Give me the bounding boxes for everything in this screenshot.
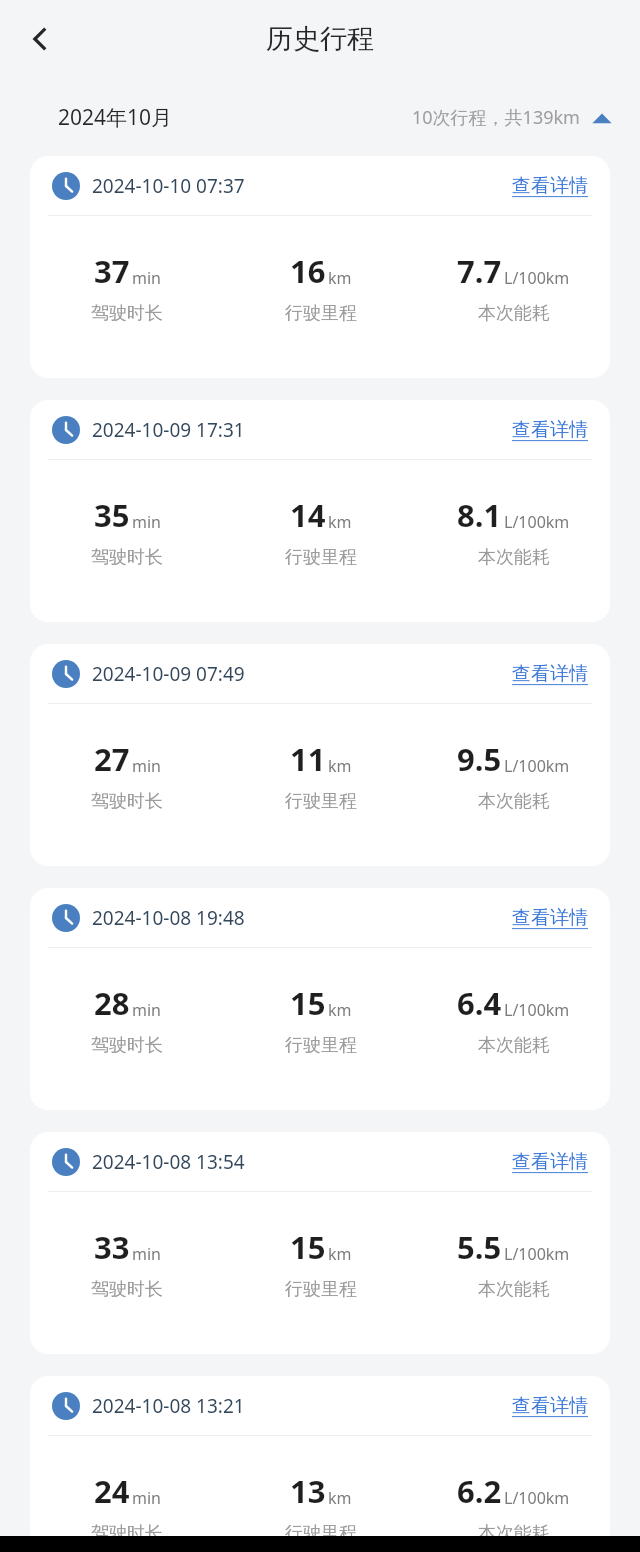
staticText: 查看详情 [512, 1394, 588, 1418]
button[interactable]: 2024-10-08 13:54 [30, 1132, 610, 1354]
staticText: 16 [290, 250, 326, 292]
staticText: 2024-10-09 07:49 [92, 661, 245, 687]
staticText: 28 [94, 982, 130, 1024]
staticText: 行驶里程 [285, 302, 357, 325]
staticText: 2024-10-08 19:48 [92, 905, 245, 931]
staticText: min [132, 755, 161, 777]
button[interactable]: 2024-10-10 07:37 [30, 156, 610, 378]
staticText: 本次能耗 [478, 1034, 550, 1057]
staticText: 2024-10-09 17:31 [92, 417, 245, 443]
staticText: L/100km [504, 1487, 570, 1509]
staticText: 本次能耗 [478, 302, 550, 325]
button[interactable]: 查看详情 [512, 1394, 588, 1418]
button[interactable]: 查看详情 [512, 662, 588, 686]
staticText: 24 [94, 1470, 130, 1512]
staticText: min [132, 1487, 161, 1509]
staticText: 13 [290, 1470, 326, 1512]
staticText: 2024-10-10 07:37 [92, 173, 245, 199]
button[interactable]: 查看详情 [512, 174, 588, 198]
staticText: 行驶里程 [285, 546, 357, 569]
staticText: 行驶里程 [285, 790, 357, 813]
button[interactable]: 2024-10-09 17:31 [30, 400, 610, 622]
staticText: 27 [94, 738, 130, 780]
staticText: min [132, 1243, 161, 1265]
staticText: L/100km [504, 1243, 570, 1265]
button[interactable]: 查看详情 [512, 418, 588, 442]
staticText: L/100km [504, 267, 570, 289]
button[interactable]: 10次行程，共139km [412, 105, 612, 130]
staticText: 查看详情 [512, 1150, 588, 1174]
staticText: L/100km [504, 755, 570, 777]
staticText: 本次能耗 [478, 1278, 550, 1301]
staticText: 6.2 [457, 1470, 502, 1512]
staticText: 6.4 [457, 982, 502, 1024]
button[interactable]: 2024-10-08 13:21 [30, 1376, 610, 1552]
staticText: 33 [94, 1226, 130, 1268]
staticText: 7.7 [457, 250, 502, 292]
staticText: km [328, 267, 352, 289]
staticText: L/100km [504, 999, 570, 1021]
staticText: 2024年10月 [58, 103, 173, 132]
staticText: 8.1 [457, 494, 502, 536]
staticText: km [328, 511, 352, 533]
staticText: 驾驶时长 [91, 302, 163, 325]
staticText: 2024-10-08 13:54 [92, 1149, 245, 1175]
staticText: 查看详情 [512, 906, 588, 930]
staticText: 行驶里程 [285, 1522, 357, 1545]
staticText: 本次能耗 [478, 790, 550, 813]
staticText: 查看详情 [512, 662, 588, 686]
staticText: 11 [290, 738, 326, 780]
staticText: 本次能耗 [478, 546, 550, 569]
staticText: 历史行程 [266, 22, 374, 56]
staticText: 15 [290, 1226, 326, 1268]
button[interactable]: Back [14, 13, 66, 65]
button[interactable]: 2024-10-09 07:49 [30, 644, 610, 866]
staticText: km [328, 1487, 352, 1509]
staticText: 14 [290, 494, 326, 536]
staticText: 查看详情 [512, 418, 588, 442]
staticText: min [132, 511, 161, 533]
staticText: km [328, 755, 352, 777]
button[interactable]: 查看详情 [512, 1150, 588, 1174]
staticText: 15 [290, 982, 326, 1024]
staticText: 5.5 [457, 1226, 502, 1268]
staticText: km [328, 999, 352, 1021]
staticText: 驾驶时长 [91, 546, 163, 569]
staticText: 驾驶时长 [91, 1034, 163, 1057]
staticText: 35 [94, 494, 130, 536]
staticText: min [132, 267, 161, 289]
staticText: 10次行程，共139km [412, 105, 580, 130]
staticText: 查看详情 [512, 174, 588, 198]
staticText: 2024-10-08 13:21 [92, 1393, 245, 1419]
staticText: 驾驶时长 [91, 790, 163, 813]
staticText: km [328, 1243, 352, 1265]
button[interactable]: 2024-10-08 19:48 [30, 888, 610, 1110]
staticText: 行驶里程 [285, 1034, 357, 1057]
button[interactable]: 查看详情 [512, 906, 588, 930]
staticText: 9.5 [457, 738, 502, 780]
staticText: 本次能耗 [478, 1522, 550, 1545]
staticText: 行驶里程 [285, 1278, 357, 1301]
staticText: 驾驶时长 [91, 1278, 163, 1301]
staticText: min [132, 999, 161, 1021]
staticText: 37 [94, 250, 130, 292]
staticText: 驾驶时长 [91, 1522, 163, 1545]
staticText: L/100km [504, 511, 570, 533]
